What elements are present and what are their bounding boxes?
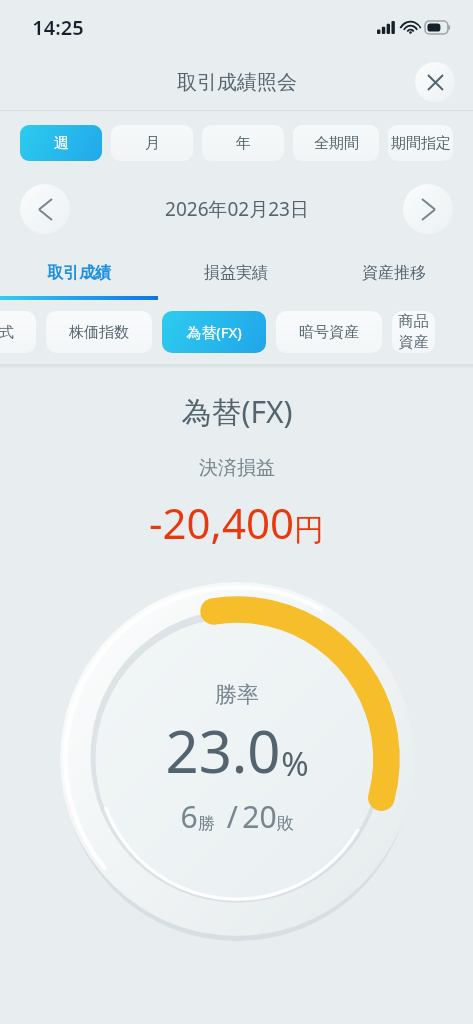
staticText: 商品資産	[392, 312, 435, 352]
staticText: 週	[54, 134, 69, 153]
staticText: 損益実績	[204, 263, 268, 283]
button[interactable]: 為替(FX)	[162, 311, 266, 353]
button[interactable]: 商品資産	[392, 311, 435, 353]
staticText: /	[215, 796, 242, 837]
button[interactable]: 株価指数	[46, 311, 152, 353]
staticText: 株価指数	[69, 323, 129, 342]
button[interactable]: 月	[111, 125, 193, 161]
button[interactable]: Close	[415, 62, 455, 102]
staticText: 取引成績照会	[177, 70, 297, 95]
staticText: 決済損益	[199, 456, 275, 480]
button[interactable]: 損益実績	[157, 250, 315, 296]
staticText: 6	[180, 796, 198, 837]
button[interactable]: 暗号資産	[276, 311, 382, 353]
staticText: 敗	[277, 813, 294, 834]
staticText: 20	[242, 796, 277, 837]
staticText: 資産推移	[362, 263, 426, 283]
staticText: 23.0	[165, 711, 281, 790]
button[interactable]: 週	[20, 125, 102, 161]
staticText: 為替(FX)	[186, 322, 242, 342]
button[interactable]: Previous period	[20, 184, 70, 234]
staticText: 月	[145, 134, 160, 153]
staticText: 取引成績	[47, 263, 111, 283]
staticText: 全期間	[314, 134, 359, 153]
staticText: 勝	[198, 813, 215, 834]
button[interactable]: 全期間	[293, 125, 379, 161]
button[interactable]: 資産推移	[315, 250, 473, 296]
button[interactable]: 取引成績	[0, 250, 157, 296]
staticText: 株式	[0, 323, 14, 342]
button[interactable]: 年	[202, 125, 284, 161]
staticText: 2026年02月23日	[165, 196, 309, 222]
staticText: 暗号資産	[299, 323, 359, 342]
staticText: 勝率	[215, 681, 259, 709]
staticText: 14:25	[32, 14, 84, 41]
staticText: %	[281, 741, 309, 786]
button[interactable]: 株式	[0, 311, 36, 353]
button[interactable]: 期間指定	[388, 125, 453, 161]
staticText: 為替(FX)	[181, 391, 293, 432]
staticText: -20,400	[149, 494, 294, 551]
staticText: 年	[236, 134, 251, 153]
staticText: 期間指定	[391, 134, 451, 153]
staticText: 円	[294, 511, 324, 549]
button[interactable]: Next period	[403, 184, 453, 234]
